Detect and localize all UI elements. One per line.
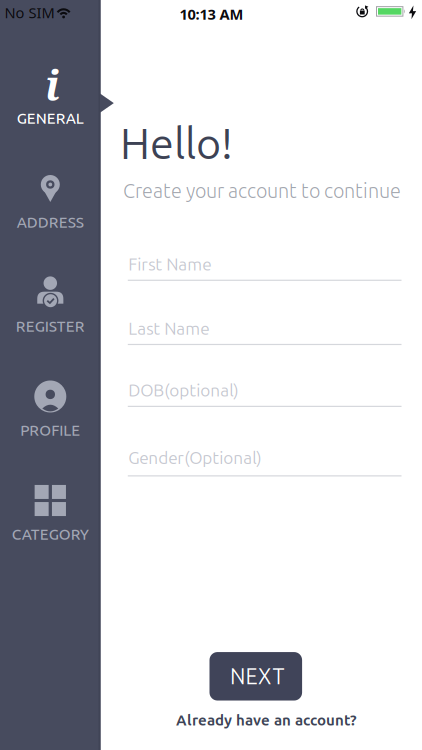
button[interactable]: PROFILE [0,379,100,439]
button[interactable]: ADDRESS [0,171,100,231]
button[interactable]: NEXT [209,652,302,700]
staticText: DOB(optional) [128,380,238,400]
staticText: GENERAL [17,110,84,127]
staticText: REGISTER [16,317,85,334]
button[interactable]: Last Name [128,319,401,345]
staticText: 10:13 AM [179,4,243,24]
button[interactable]: i [0,68,100,127]
button[interactable]: Gender(Optional) [128,448,401,476]
staticText: Create your account to continue [123,180,401,202]
staticText: ADDRESS [17,213,84,230]
staticText: Hello! [120,119,233,167]
staticText: i [45,56,60,113]
staticText: Gender(Optional) [128,448,261,467]
staticText: Already have an account? [176,712,357,728]
staticText: No SIM [4,3,54,22]
button[interactable]: DOB(optional) [128,380,401,407]
staticText: PROFILE [20,421,80,438]
button[interactable]: First Name [128,254,401,281]
button[interactable]: CATEGORY [0,483,100,543]
staticText: First Name [128,254,211,274]
staticText: CATEGORY [12,525,89,542]
button[interactable]: Already have an account? [176,712,357,728]
button[interactable]: REGISTER [0,275,100,335]
staticText: NEXT [230,664,284,688]
staticText: Last Name [128,319,209,338]
